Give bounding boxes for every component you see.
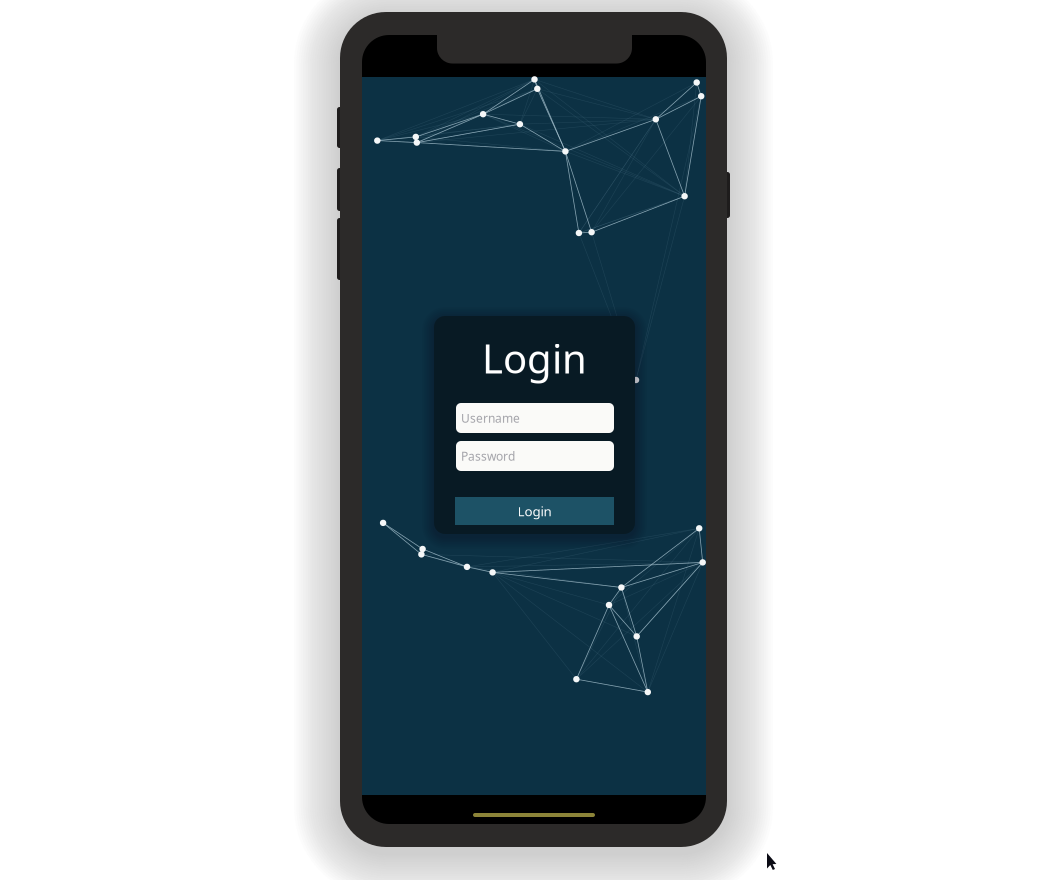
- button[interactable]: Username: [456, 403, 614, 433]
- staticText: Username: [461, 410, 520, 426]
- staticText: Login: [482, 331, 587, 384]
- staticText: Password: [461, 448, 515, 464]
- button[interactable]: Login: [455, 497, 614, 525]
- button[interactable]: Password: [456, 441, 614, 471]
- staticText: Login: [517, 502, 551, 520]
